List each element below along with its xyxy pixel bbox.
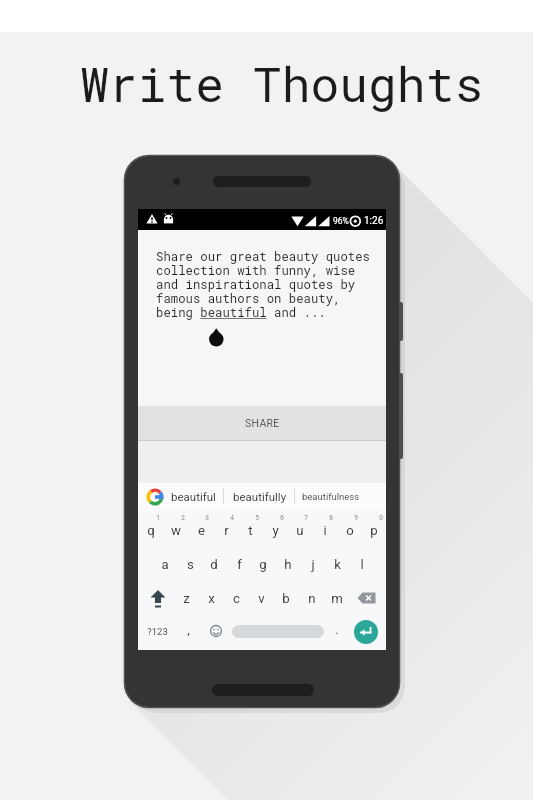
button[interactable]: h xyxy=(276,552,300,576)
staticText: v xyxy=(258,591,265,606)
staticText: h xyxy=(284,557,292,572)
staticText: n xyxy=(308,591,316,606)
staticText: u xyxy=(296,523,304,538)
staticText: , xyxy=(187,622,190,637)
button[interactable]: 2 xyxy=(178,513,188,523)
staticText: s xyxy=(187,557,194,572)
staticText: g xyxy=(259,557,267,572)
staticText: b xyxy=(282,591,290,606)
staticText: m xyxy=(331,591,343,606)
staticText: e xyxy=(198,523,205,538)
staticText: beautifulness xyxy=(302,491,360,502)
button[interactable]: s xyxy=(178,552,202,576)
button[interactable]: b xyxy=(274,586,298,610)
button[interactable] xyxy=(232,625,324,638)
button[interactable]: 9 xyxy=(351,513,361,523)
button[interactable]: beautifully xyxy=(233,490,287,503)
button[interactable]: , xyxy=(181,617,195,641)
staticText: 7 xyxy=(304,514,308,522)
button[interactable] xyxy=(149,588,167,610)
button[interactable]: 5 xyxy=(252,513,262,523)
staticText: 4 xyxy=(230,514,234,522)
button[interactable]: q xyxy=(139,518,163,542)
button[interactable]: a xyxy=(153,552,177,576)
staticText: 8 xyxy=(329,514,333,522)
staticText: y xyxy=(272,523,279,538)
staticText: 6 xyxy=(280,514,284,522)
staticText: r xyxy=(224,523,229,538)
button[interactable]: r xyxy=(214,518,238,542)
staticText: 1 xyxy=(156,514,160,522)
button[interactable]: ?123 xyxy=(142,619,172,643)
staticText: k xyxy=(334,557,341,572)
staticText: Write Thoughts xyxy=(80,52,484,115)
button[interactable] xyxy=(209,624,223,638)
staticText: 0 xyxy=(379,514,383,522)
button[interactable]: p xyxy=(362,518,386,542)
staticText: 96% xyxy=(333,216,349,226)
button[interactable] xyxy=(357,591,377,605)
staticText: 2 xyxy=(181,514,185,522)
staticText: d xyxy=(210,557,218,572)
staticText: 9 xyxy=(354,514,358,522)
staticText: p xyxy=(370,523,378,538)
button[interactable]: m xyxy=(325,586,349,610)
staticText: t xyxy=(248,523,253,538)
button[interactable]: beautiful xyxy=(171,490,216,503)
button[interactable]: 0 xyxy=(376,513,386,523)
button[interactable]: g xyxy=(251,552,275,576)
button[interactable]: i xyxy=(313,518,337,542)
staticText: w xyxy=(171,523,181,538)
button[interactable]: d xyxy=(202,552,226,576)
staticText: x xyxy=(208,591,215,606)
button[interactable]: SHARE xyxy=(138,406,386,440)
staticText: ?123 xyxy=(147,626,168,637)
button[interactable]: 4 xyxy=(227,513,237,523)
staticText: i xyxy=(323,523,327,538)
staticText: o xyxy=(346,523,354,538)
button[interactable]: 8 xyxy=(326,513,336,523)
button[interactable]: n xyxy=(300,586,324,610)
button[interactable]: w xyxy=(164,518,188,542)
staticText: Share our great beauty quotes collection… xyxy=(156,248,371,321)
staticText: j xyxy=(311,557,315,572)
staticText: 5 xyxy=(255,514,259,522)
button[interactable]: u xyxy=(288,518,312,542)
staticText: SHARE xyxy=(245,417,280,429)
staticText: beautiful xyxy=(171,490,216,503)
button[interactable]: l xyxy=(350,552,374,576)
button[interactable]: e xyxy=(189,518,213,542)
staticText: z xyxy=(183,591,190,606)
staticText: . xyxy=(335,622,339,637)
button[interactable]: t xyxy=(238,518,262,542)
button[interactable] xyxy=(354,620,378,644)
button[interactable]: x xyxy=(199,586,223,610)
button[interactable]: 7 xyxy=(301,513,311,523)
button[interactable]: v xyxy=(249,586,273,610)
button[interactable]: y xyxy=(263,518,287,542)
staticText: l xyxy=(360,557,364,572)
button[interactable]: 1 xyxy=(153,513,163,523)
staticText: q xyxy=(147,523,155,538)
button[interactable]: c xyxy=(224,586,248,610)
button[interactable]: beautifulness xyxy=(302,491,360,502)
button[interactable]: j xyxy=(301,552,325,576)
staticText: beautifully xyxy=(233,490,287,503)
button[interactable]: 6 xyxy=(277,513,287,523)
button[interactable]: o xyxy=(338,518,362,542)
staticText: 1:26 xyxy=(364,215,384,227)
staticText: 3 xyxy=(205,514,209,522)
button[interactable]: . xyxy=(330,617,344,641)
button[interactable]: f xyxy=(227,552,251,576)
staticText: a xyxy=(161,557,169,572)
staticText: f xyxy=(237,557,242,572)
button[interactable]: z xyxy=(174,586,198,610)
button[interactable]: k xyxy=(325,552,349,576)
button[interactable]: 3 xyxy=(202,513,212,523)
staticText: c xyxy=(233,591,240,606)
